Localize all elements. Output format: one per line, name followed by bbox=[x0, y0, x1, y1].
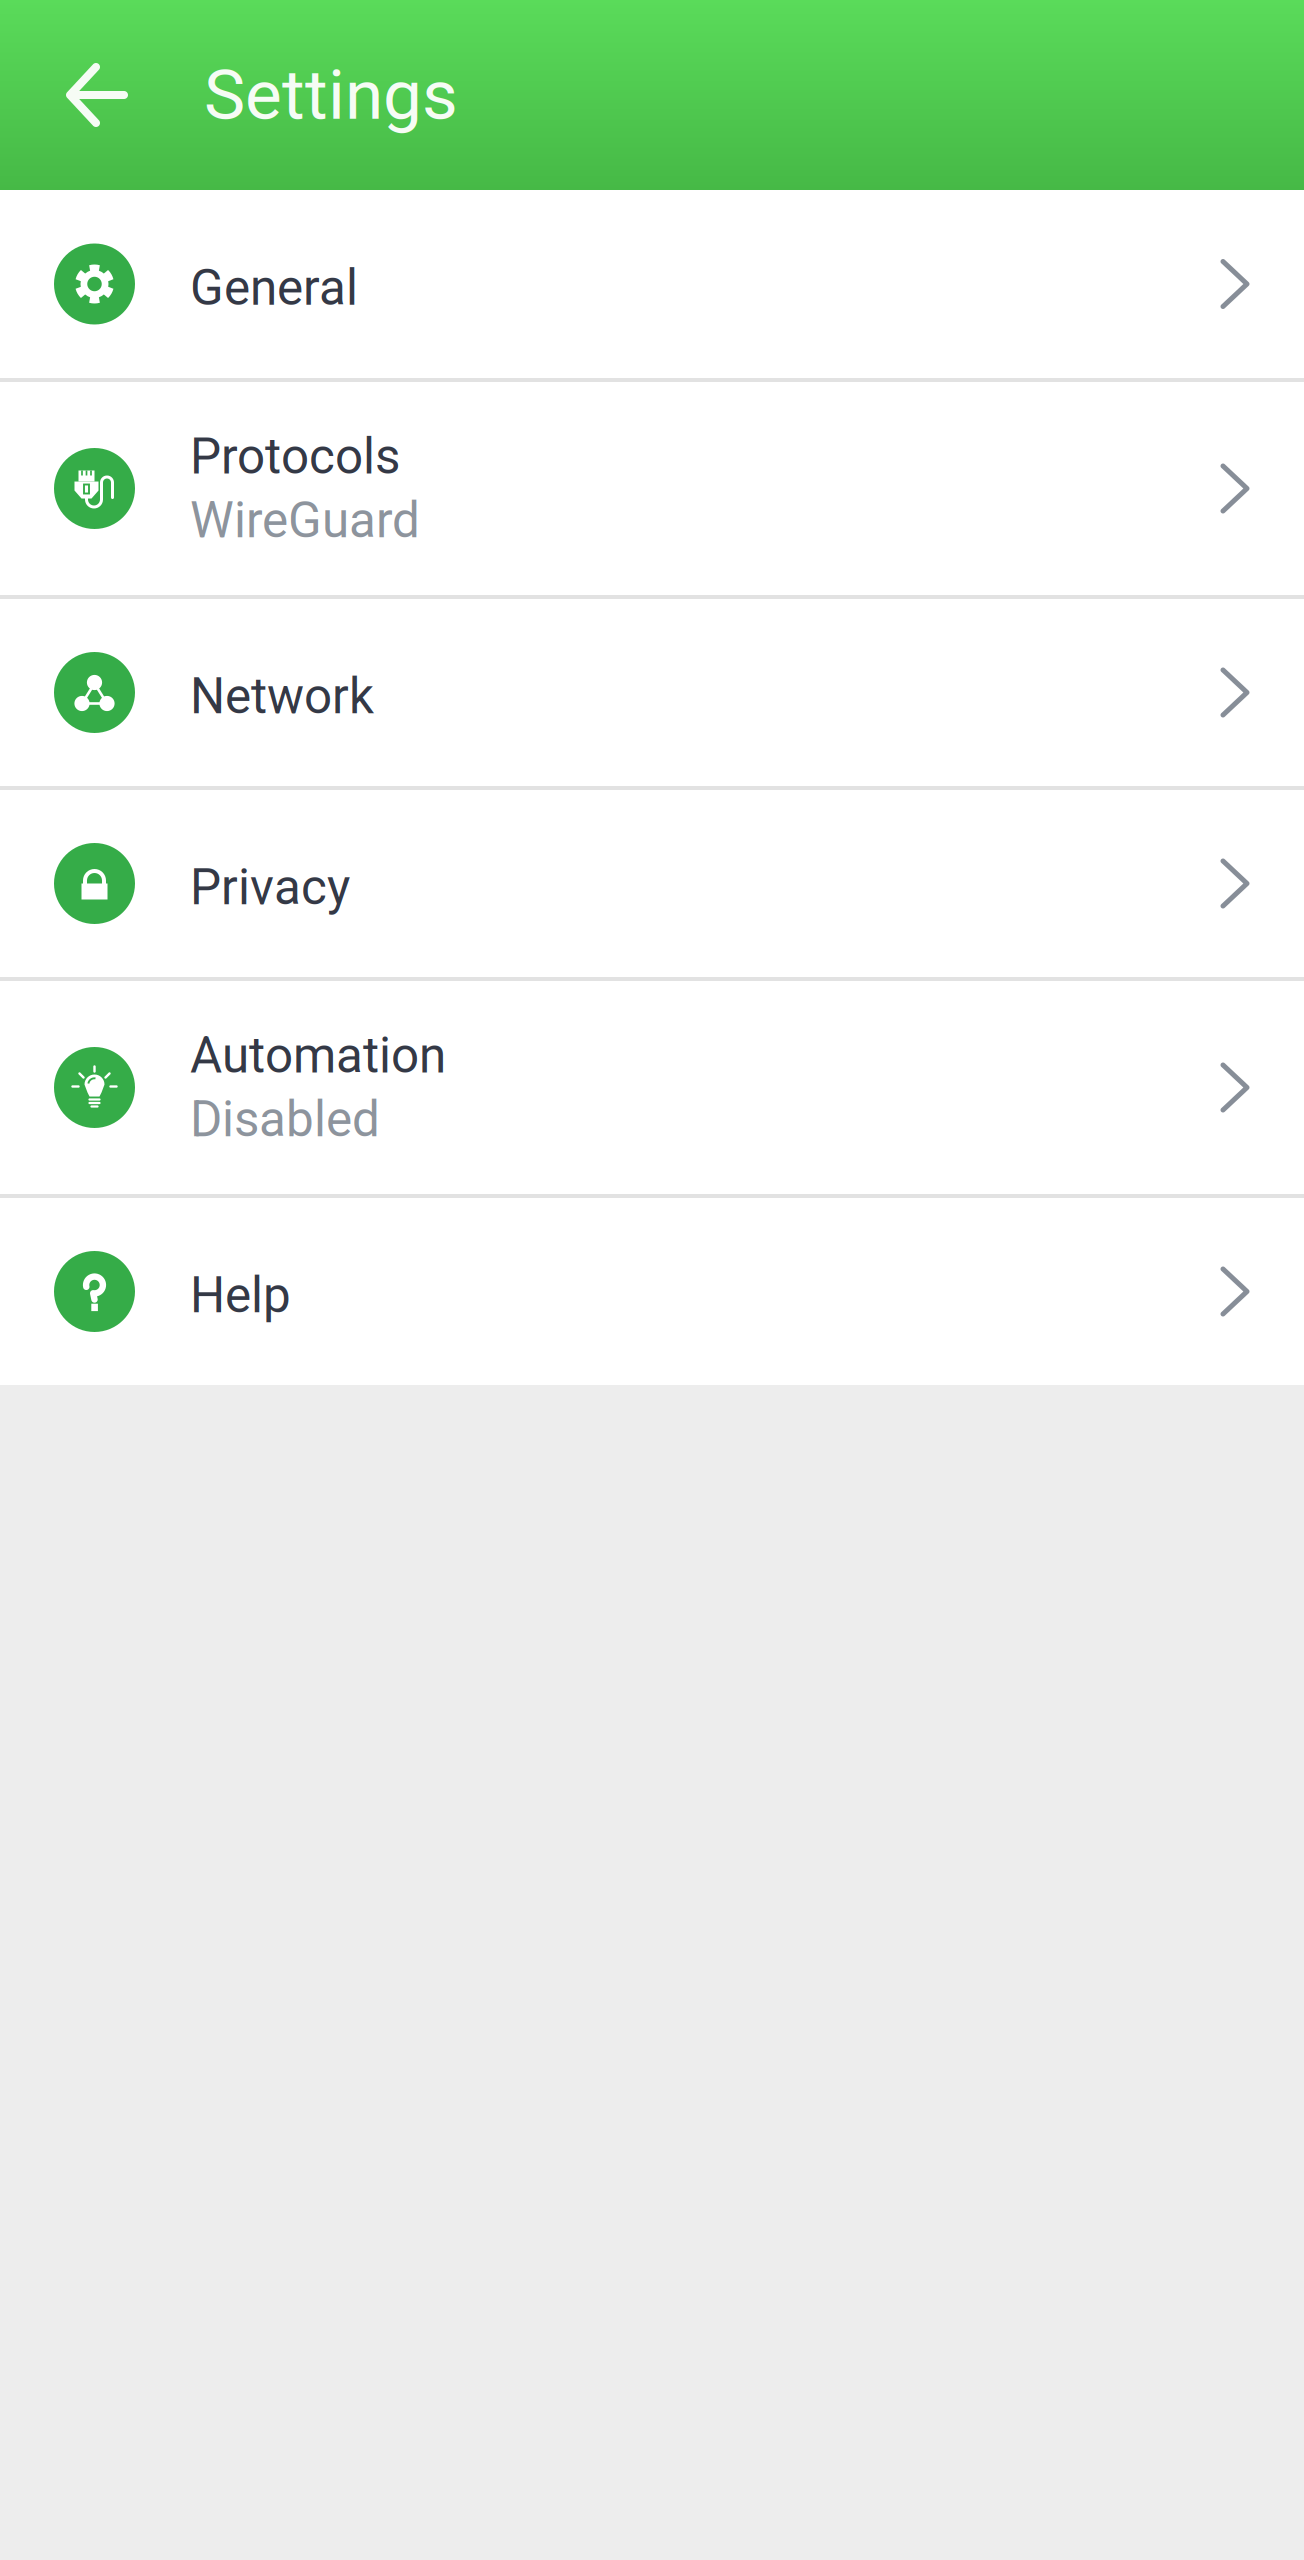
staticText: WireGuard bbox=[190, 491, 420, 549]
staticText: Network bbox=[190, 668, 374, 725]
button[interactable]: Automation bbox=[0, 981, 1304, 1194]
button[interactable]: Privacy bbox=[0, 790, 1304, 977]
staticText: Privacy bbox=[190, 859, 350, 916]
button[interactable]: Back bbox=[35, 33, 159, 157]
staticText: Automation bbox=[190, 1027, 446, 1084]
button[interactable]: General bbox=[0, 190, 1304, 378]
button[interactable]: Protocols bbox=[0, 382, 1304, 595]
staticText: General bbox=[190, 259, 358, 317]
button[interactable]: Network bbox=[0, 599, 1304, 786]
staticText: Settings bbox=[204, 54, 458, 136]
button[interactable]: Help bbox=[0, 1198, 1304, 1385]
staticText: Disabled bbox=[190, 1090, 380, 1148]
staticText: Protocols bbox=[190, 428, 400, 485]
staticText: Help bbox=[190, 1267, 291, 1324]
